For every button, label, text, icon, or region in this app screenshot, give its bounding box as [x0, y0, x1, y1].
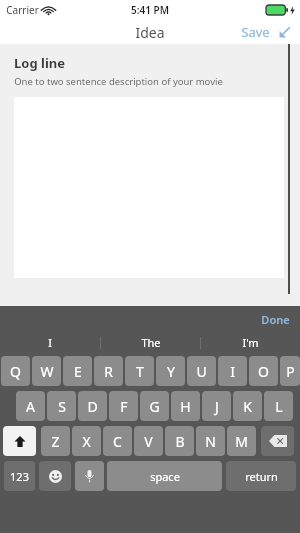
button[interactable]: Z	[41, 426, 70, 456]
button[interactable]: W	[32, 356, 61, 386]
staticText: H	[180, 397, 191, 416]
button[interactable]: I'm	[201, 332, 300, 353]
button[interactable]: Y	[156, 356, 185, 386]
staticText: D	[87, 397, 98, 416]
button[interactable]: S	[47, 391, 76, 421]
button[interactable]: T	[125, 356, 154, 386]
staticText: G	[149, 397, 160, 416]
staticText: I'm	[242, 335, 259, 350]
staticText: E	[74, 362, 82, 381]
button[interactable]: F	[109, 391, 138, 421]
staticText: I	[48, 335, 52, 350]
staticText: A	[26, 397, 35, 416]
staticText: M	[235, 432, 248, 451]
staticText: Y	[167, 362, 175, 381]
staticText: W	[40, 362, 54, 381]
staticText: V	[144, 432, 153, 451]
staticText: K	[243, 397, 252, 416]
staticText: O	[258, 362, 269, 381]
staticText: 123	[10, 469, 29, 484]
staticText: N	[205, 432, 216, 451]
button[interactable]: Dictation	[75, 461, 104, 491]
staticText: X	[82, 432, 91, 451]
button[interactable]: 123	[4, 461, 35, 491]
button[interactable]: G	[140, 391, 169, 421]
staticText: The	[141, 335, 161, 350]
button[interactable]: V	[134, 426, 163, 456]
button[interactable]: Delete	[261, 426, 294, 456]
button[interactable]: Emoji	[39, 461, 71, 491]
button[interactable]: L	[264, 391, 293, 421]
button[interactable]: B	[165, 426, 194, 456]
button[interactable]: O	[249, 356, 278, 386]
staticText: I	[230, 362, 235, 381]
button[interactable]: I	[218, 356, 247, 386]
button[interactable]: C	[103, 426, 132, 456]
button[interactable]: N	[196, 426, 225, 456]
button[interactable]: The	[101, 332, 200, 353]
staticText: B	[175, 432, 185, 451]
staticText: 5:41 PM	[131, 3, 169, 17]
button[interactable]: P	[280, 356, 300, 386]
staticText: U	[196, 362, 207, 381]
staticText: Done	[261, 312, 290, 327]
staticText: S	[58, 397, 66, 416]
button[interactable]: D	[78, 391, 107, 421]
button[interactable]: Save	[241, 23, 270, 41]
button[interactable]: Q	[1, 356, 30, 386]
staticText: Carrier	[6, 3, 39, 17]
button[interactable]: Shift	[3, 426, 36, 456]
staticText: Save	[241, 23, 270, 41]
staticText: C	[113, 432, 122, 451]
button[interactable]: M	[227, 426, 256, 456]
button[interactable]: X	[72, 426, 101, 456]
button[interactable]: H	[171, 391, 200, 421]
staticText: J	[215, 397, 219, 416]
staticText: return	[245, 469, 278, 484]
staticText: Z	[51, 432, 60, 451]
button[interactable]: R	[94, 356, 123, 386]
button[interactable]: return	[226, 461, 296, 491]
staticText: Log line	[14, 54, 65, 72]
staticText: P	[286, 362, 295, 381]
button[interactable]: A	[16, 391, 45, 421]
button[interactable]: U	[187, 356, 216, 386]
staticText: T	[136, 362, 144, 381]
button[interactable]: J	[202, 391, 231, 421]
button[interactable]: I	[0, 332, 100, 353]
button[interactable]: space	[107, 461, 222, 491]
button[interactable]: Collapse	[272, 20, 296, 44]
button[interactable]: K	[233, 391, 262, 421]
staticText: space	[150, 469, 180, 484]
staticText: L	[275, 397, 283, 416]
button[interactable]: E	[63, 356, 92, 386]
staticText: Idea	[135, 23, 165, 42]
staticText: F	[120, 397, 128, 416]
button[interactable]: Done	[261, 312, 290, 327]
staticText: Q	[10, 362, 21, 381]
staticText: One to two sentence description of your …	[14, 75, 223, 88]
staticText: R	[104, 362, 113, 381]
